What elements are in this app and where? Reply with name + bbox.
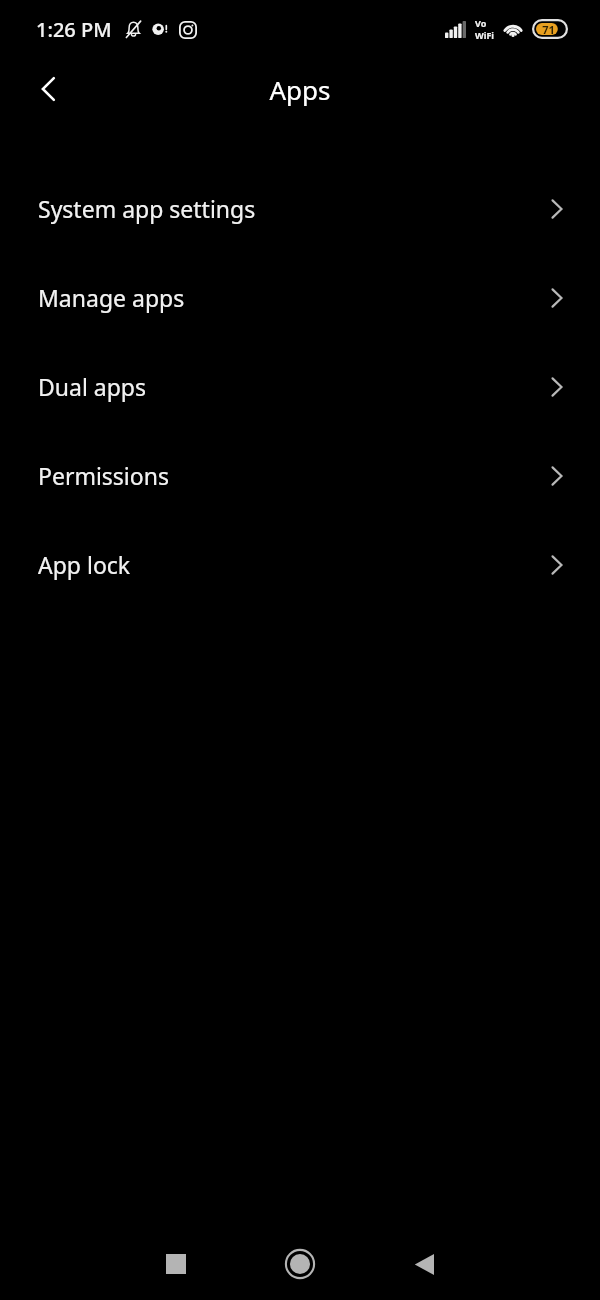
staticText: Permissions [38,460,550,491]
staticText: System app settings [38,193,550,224]
button[interactable]: Back [394,1234,454,1294]
button[interactable]: Back [22,62,76,116]
staticText: 1:26 PM [36,16,112,43]
staticText: Vo [475,17,487,29]
button[interactable]: App lock [0,520,600,609]
button[interactable]: Home [270,1234,330,1294]
button[interactable]: System app settings [0,164,600,253]
button[interactable]: Dual apps [0,342,600,431]
button[interactable]: Manage apps [0,253,600,342]
button[interactable]: Recent apps [146,1234,206,1294]
button[interactable]: Permissions [0,431,600,520]
staticText: 71 [542,22,555,37]
staticText: Dual apps [38,371,550,402]
staticText: Apps [269,72,331,107]
staticText: WiFi [475,29,495,41]
staticText: Manage apps [38,282,550,313]
staticText: App lock [38,549,550,580]
